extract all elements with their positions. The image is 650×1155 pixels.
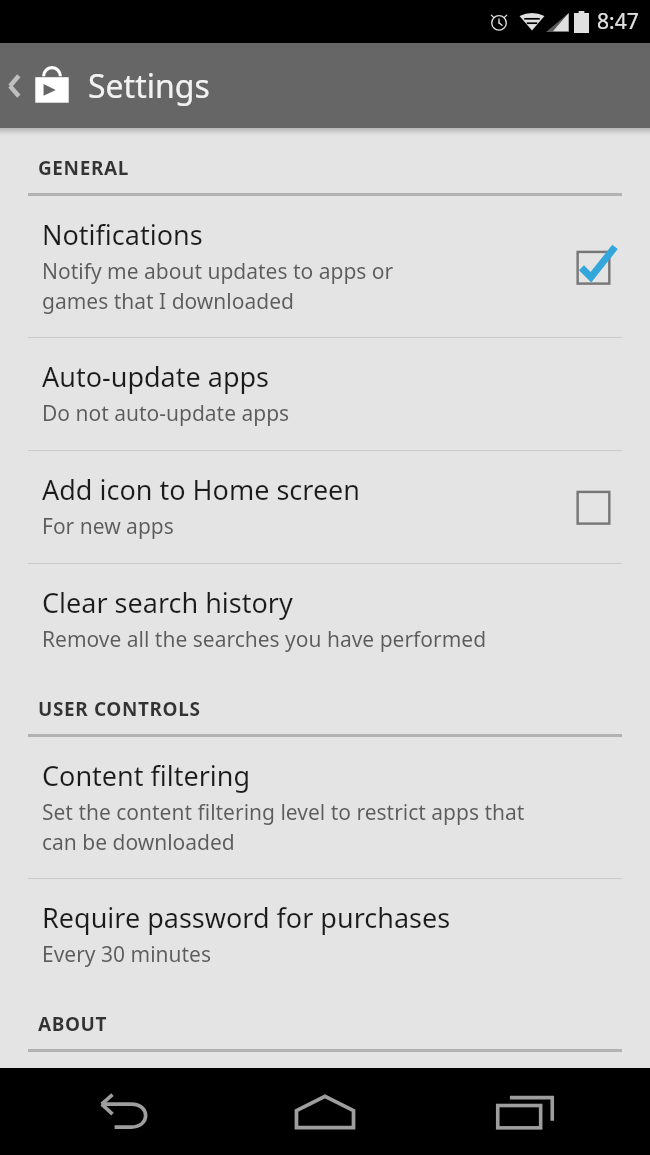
staticText: ABOUT <box>38 1011 108 1037</box>
staticText: USER CONTROLS <box>38 696 201 722</box>
staticText: Content filtering <box>42 757 251 794</box>
button[interactable]: Content filtering <box>0 737 650 878</box>
staticText: Settings <box>88 64 210 108</box>
staticText: GENERAL <box>38 155 129 181</box>
staticText: Remove all the searches you have perform… <box>42 625 487 654</box>
button[interactable]: Clear search history <box>0 564 650 676</box>
button[interactable]: Recent apps <box>450 1068 600 1155</box>
button[interactable]: Back <box>50 1068 200 1155</box>
staticText: Every 30 minutes <box>42 940 212 969</box>
button[interactable]: Home <box>250 1068 400 1155</box>
staticText: Clear search history <box>42 584 293 621</box>
staticText: Do not auto-update apps <box>42 399 290 428</box>
staticText: Require password for purchases <box>42 899 451 936</box>
staticText: Notifications <box>42 216 203 253</box>
staticText: For new apps <box>42 512 174 541</box>
staticText: Notify me about updates to apps or games… <box>42 257 394 315</box>
staticText: Set the content filtering level to restr… <box>42 798 525 856</box>
staticText: Add icon to Home screen <box>42 471 361 508</box>
button[interactable]: Notifications <box>0 196 650 337</box>
button[interactable]: Add icon to Home screen <box>0 451 650 563</box>
staticText: Auto-update apps <box>42 358 270 395</box>
button[interactable]: Auto-update apps <box>0 338 650 450</box>
button[interactable]: Enabled <box>568 237 626 295</box>
button[interactable]: Require password for purchases <box>0 879 650 991</box>
button[interactable]: Navigate up <box>0 52 80 120</box>
staticText: 8:47 <box>597 7 639 36</box>
button[interactable]: Disabled <box>568 477 626 535</box>
